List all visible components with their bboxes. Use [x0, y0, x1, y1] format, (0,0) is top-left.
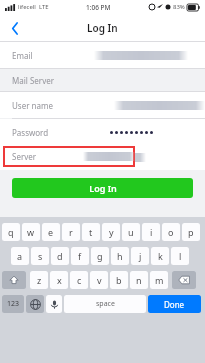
button[interactable]: w — [22, 223, 40, 241]
staticText: v — [97, 274, 102, 286]
button[interactable]: Back — [0, 14, 30, 42]
staticText: j — [139, 250, 142, 262]
staticText: Email — [12, 50, 33, 61]
button[interactable]: p — [182, 223, 200, 241]
staticText: Log In — [89, 182, 117, 194]
button[interactable]: e — [42, 223, 60, 241]
button[interactable]: Email — [0, 42, 205, 68]
staticText: Server — [12, 151, 37, 162]
button[interactable]: v — [90, 271, 108, 289]
button[interactable]: g — [91, 247, 109, 265]
staticText: LTE — [39, 3, 49, 11]
staticText: a — [17, 250, 23, 262]
staticText: Password — [12, 127, 49, 138]
staticText: 123 — [7, 299, 20, 309]
button[interactable]: User name — [0, 92, 205, 118]
button[interactable]: t — [82, 223, 100, 241]
button[interactable]: u — [122, 223, 140, 241]
staticText: r — [69, 226, 73, 238]
staticText: Done — [164, 299, 185, 310]
staticText: i — [150, 226, 153, 238]
staticText: c — [77, 274, 82, 286]
button[interactable]: r — [62, 223, 80, 241]
button[interactable]: a — [11, 247, 29, 265]
button[interactable]: j — [131, 247, 149, 265]
button[interactable]: q — [2, 223, 20, 241]
button[interactable]: b — [110, 271, 128, 289]
button[interactable]: k — [151, 247, 169, 265]
staticText: e — [48, 226, 54, 238]
button[interactable]: space — [64, 295, 146, 313]
button[interactable]: c — [70, 271, 88, 289]
button[interactable]: Dictation — [46, 295, 62, 313]
button[interactable]: Emoji keyboard — [26, 295, 44, 313]
staticText: Server — [12, 152, 37, 163]
button[interactable]: x — [50, 271, 68, 289]
staticText: n — [136, 274, 142, 286]
staticText: 83% — [173, 3, 185, 11]
staticText: lifecell — [18, 3, 36, 11]
staticText: space — [96, 299, 115, 309]
button[interactable]: o — [162, 223, 180, 241]
staticText: q — [8, 226, 14, 238]
staticText: t — [89, 226, 93, 238]
staticText: d — [57, 250, 63, 262]
staticText: Mail Server — [12, 75, 55, 86]
staticText: p — [188, 226, 194, 238]
button[interactable]: Shift — [2, 271, 26, 289]
staticText: s — [38, 250, 43, 262]
staticText: b — [116, 274, 122, 286]
staticText: 1:06 PM — [86, 3, 111, 12]
button[interactable]: f — [71, 247, 89, 265]
staticText: h — [117, 250, 123, 262]
button[interactable]: i — [142, 223, 160, 241]
staticText: User name — [12, 100, 53, 111]
button[interactable]: 123 — [2, 295, 24, 313]
staticText: z — [37, 274, 42, 286]
staticText: y — [109, 226, 114, 238]
staticText: Log In — [87, 21, 118, 35]
button[interactable]: s — [31, 247, 49, 265]
button[interactable]: y — [102, 223, 120, 241]
button[interactable]: n — [130, 271, 148, 289]
button[interactable]: z — [30, 271, 48, 289]
button[interactable]: Server — [0, 145, 205, 170]
staticText: m — [155, 274, 164, 286]
button[interactable]: Backspace — [172, 271, 196, 289]
button[interactable]: Log In — [12, 178, 193, 198]
staticText: o — [168, 226, 174, 238]
button[interactable]: Password — [0, 119, 205, 145]
button[interactable]: d — [51, 247, 69, 265]
button[interactable]: m — [150, 271, 168, 289]
staticText: w — [27, 226, 35, 238]
staticText: f — [78, 250, 82, 262]
staticText: g — [97, 250, 103, 262]
button[interactable]: h — [111, 247, 129, 265]
staticText: k — [158, 250, 163, 262]
button[interactable]: Done — [148, 295, 201, 313]
button[interactable]: l — [171, 247, 189, 265]
staticText: x — [57, 274, 62, 286]
staticText: u — [128, 226, 134, 238]
staticText: l — [179, 250, 182, 262]
